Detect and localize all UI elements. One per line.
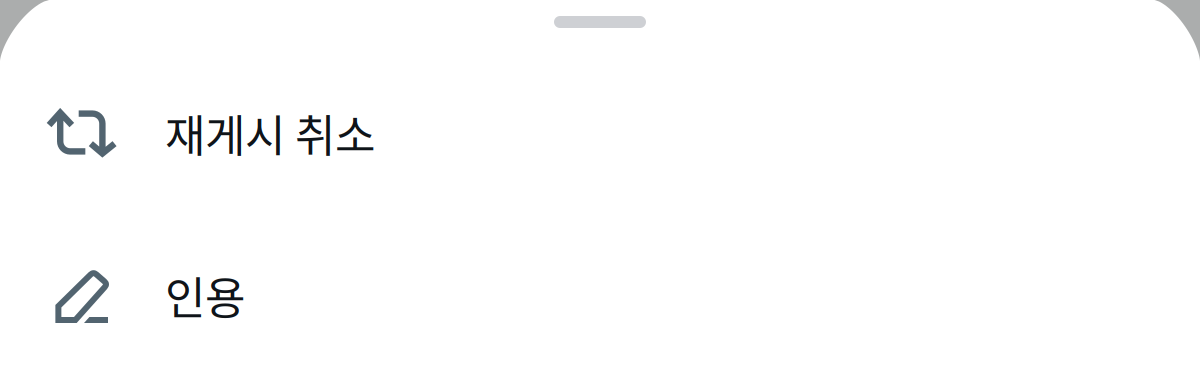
button[interactable]: 재게시 취소 <box>0 80 1200 186</box>
staticText: 인용 <box>165 263 245 327</box>
button[interactable]: 인용 <box>0 242 1200 348</box>
staticText: 재게시 취소 <box>165 101 375 165</box>
